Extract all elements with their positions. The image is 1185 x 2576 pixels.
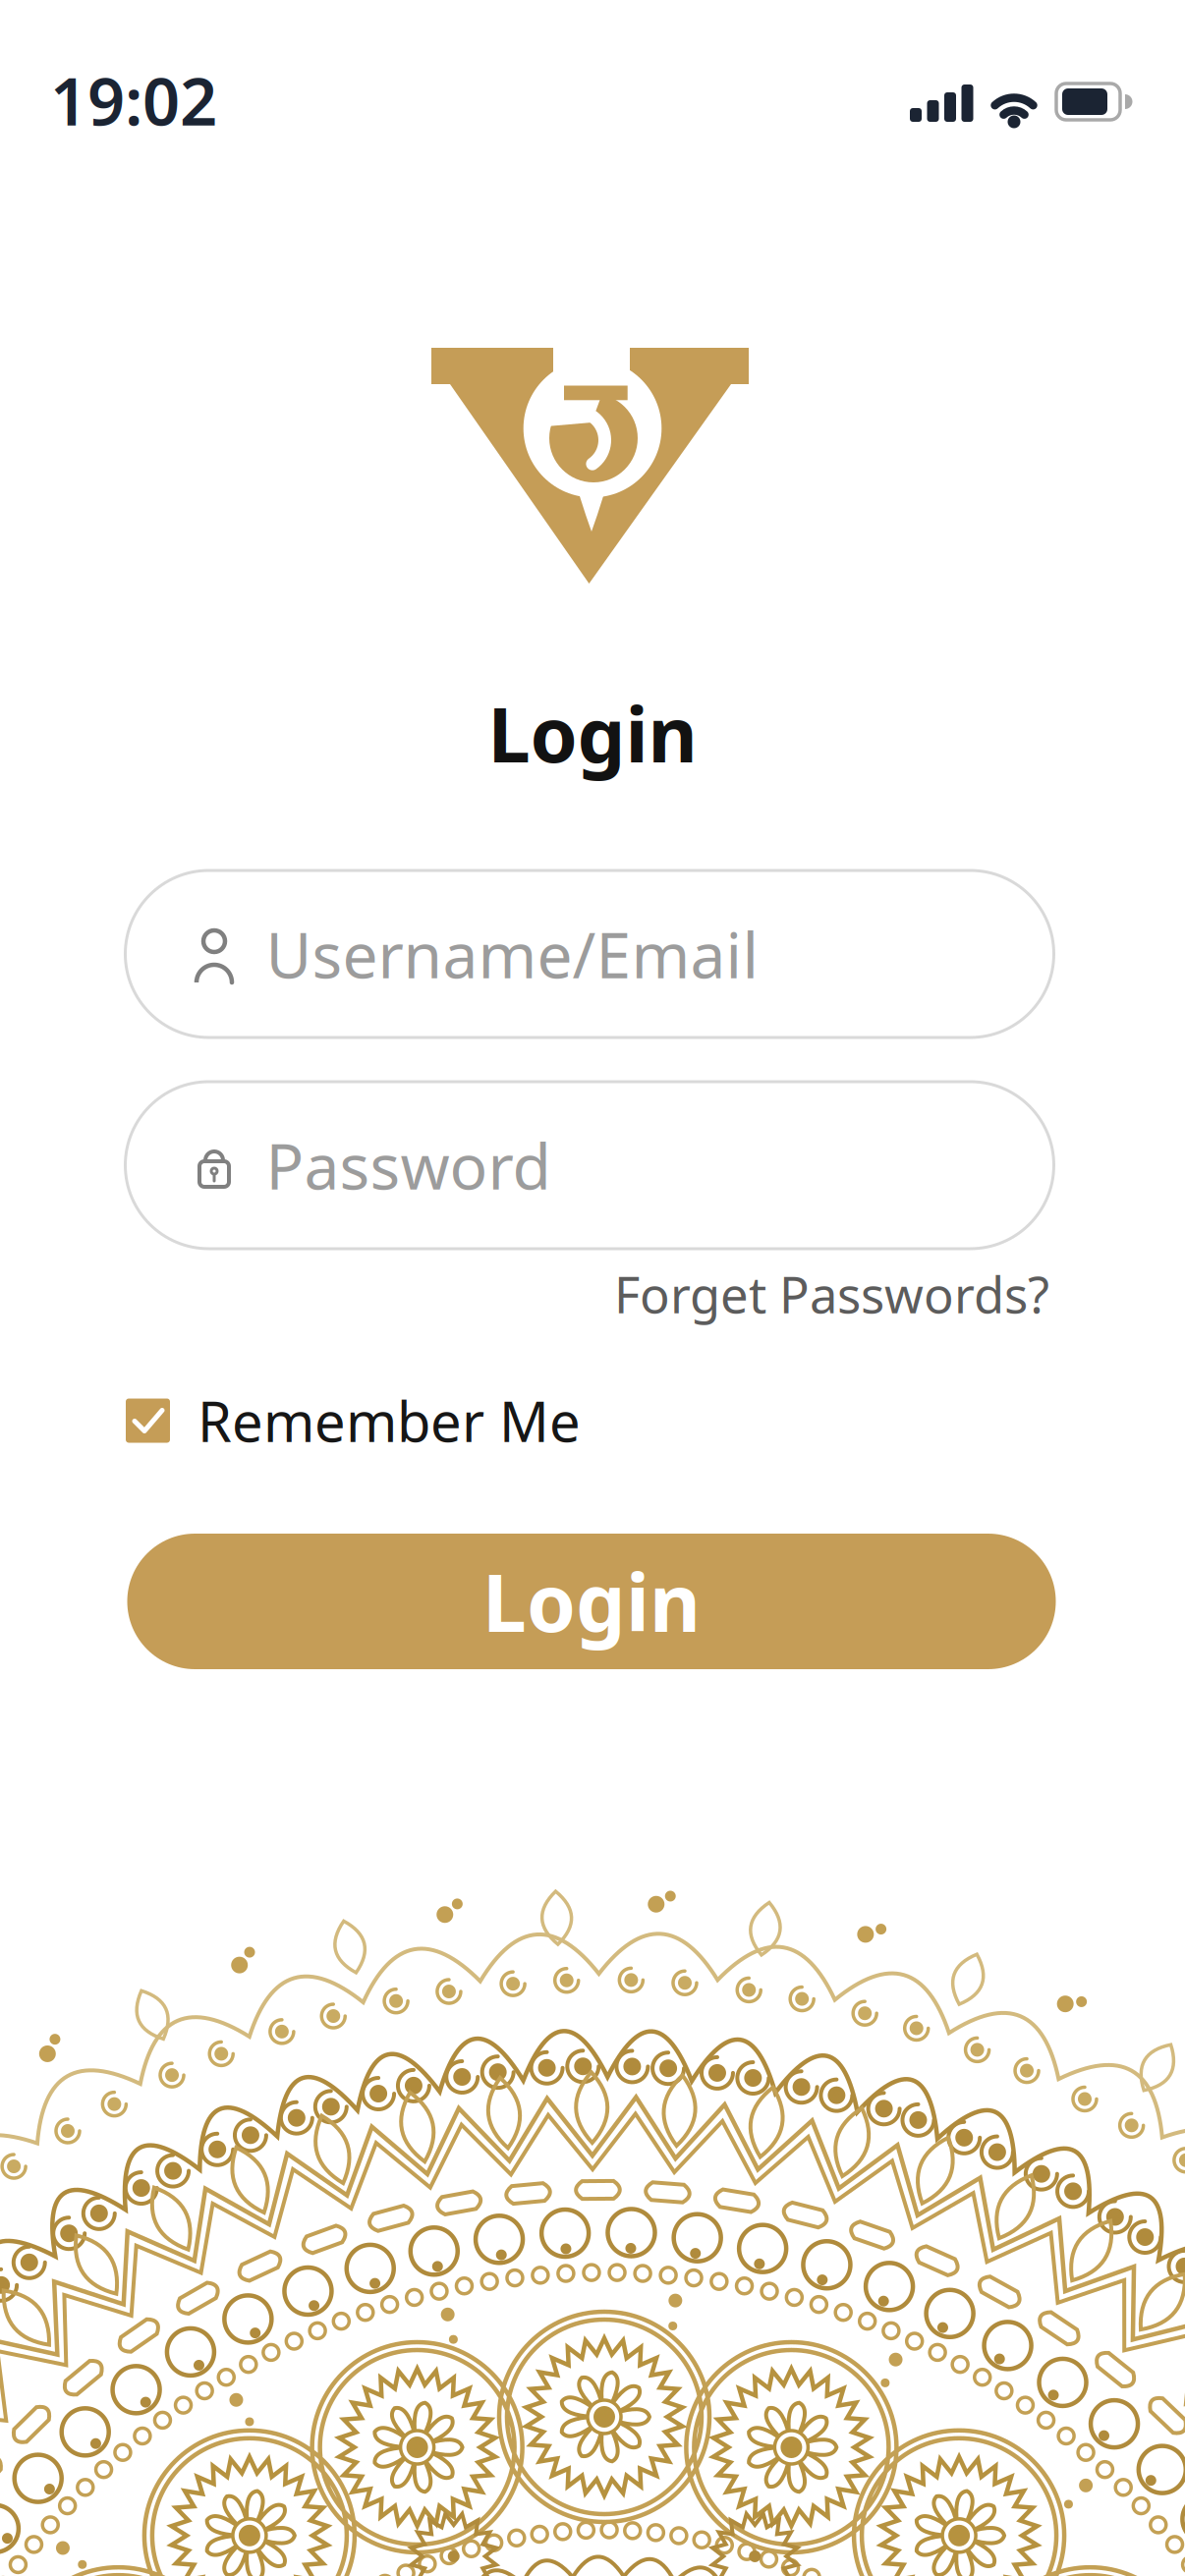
staticText: Login [482,1549,701,1654]
button[interactable]: Forget Passwords? [126,1261,1049,1327]
staticText: Forget Passwords? [614,1261,1049,1327]
staticText: Username/Email [266,912,759,996]
button[interactable]: Password [125,1082,1054,1249]
staticText: Remember Me [197,1384,581,1457]
staticText: Login [488,683,697,783]
button[interactable]: Login [127,1534,1056,1669]
button[interactable]: Remember Me [126,1384,1059,1457]
staticText: Password [266,1123,551,1207]
button[interactable]: Username/Email [125,870,1054,1037]
staticText: 19:02 [50,57,217,144]
